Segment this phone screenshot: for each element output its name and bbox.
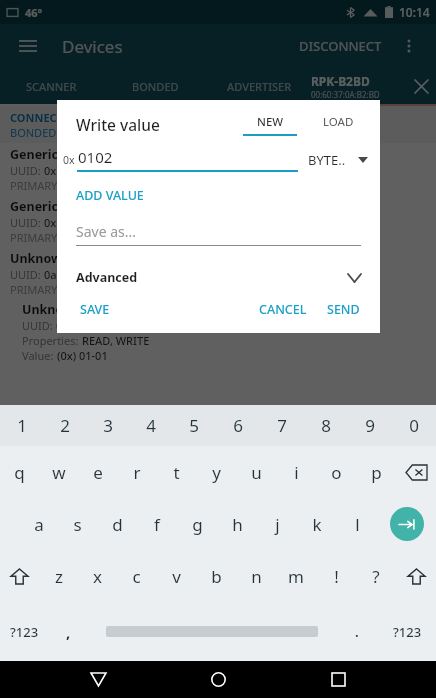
button[interactable]: More options [396, 33, 422, 59]
button[interactable]: ! [316, 550, 356, 602]
button[interactable]: Unknown Service [0, 247, 436, 299]
button[interactable]: SCANNER [0, 68, 103, 104]
button[interactable]: SEND [323, 297, 364, 322]
button[interactable]: 5 [172, 405, 216, 446]
staticText: , [66, 622, 71, 642]
button[interactable]: 4 [129, 405, 172, 446]
staticText: Unknown Service [10, 250, 118, 267]
staticText: k [312, 513, 322, 536]
button[interactable]: ? [356, 550, 396, 602]
button[interactable]: r [117, 446, 156, 498]
button[interactable]: 0 [392, 405, 436, 446]
button[interactable]: m [276, 550, 316, 602]
button[interactable]: k [297, 498, 337, 550]
button[interactable]: l [337, 498, 377, 550]
button[interactable]: . [335, 602, 379, 661]
staticText: z [55, 565, 63, 588]
staticText: a [34, 513, 44, 536]
staticText: BONDED [132, 79, 179, 94]
button[interactable]: b [196, 550, 236, 602]
button[interactable]: Backspace [396, 446, 436, 498]
button[interactable]: 9 [348, 405, 392, 446]
button[interactable]: CANCEL [255, 297, 311, 322]
button[interactable]: 6 [216, 405, 260, 446]
button[interactable]: Home [196, 661, 240, 698]
button[interactable]: g [177, 498, 217, 550]
button[interactable]: 1 [0, 405, 43, 446]
button[interactable]: p [356, 446, 396, 498]
staticText: 0x [63, 153, 75, 167]
button[interactable]: DISCONNECT [295, 31, 386, 61]
button[interactable]: u [236, 446, 276, 498]
button[interactable]: e [78, 446, 117, 498]
button[interactable]: 3 [86, 405, 129, 446]
button[interactable]: s [58, 498, 97, 550]
staticText: 10:14 [399, 4, 430, 20]
button[interactable]: j [257, 498, 297, 550]
button[interactable]: Space [88, 602, 335, 661]
button[interactable]: i [276, 446, 316, 498]
button[interactable]: , [48, 602, 88, 661]
staticText: Unknown Characteristic [22, 301, 173, 318]
button[interactable]: Enter [377, 498, 436, 550]
button[interactable]: BYTE.. [308, 151, 368, 172]
button[interactable]: d [97, 498, 137, 550]
button[interactable]: Recents [316, 661, 360, 698]
staticText: 4 [146, 414, 156, 437]
staticText: h [232, 513, 243, 536]
staticText: UUID: [10, 267, 44, 282]
button[interactable]: c [117, 550, 156, 602]
button[interactable]: v [156, 550, 196, 602]
button[interactable]: h [217, 498, 257, 550]
staticText: Write value [76, 114, 160, 135]
button[interactable]: RPK-B2BD [311, 68, 436, 104]
button[interactable]: BONDED [103, 68, 207, 104]
button[interactable]: NEW [237, 114, 303, 136]
staticText: e [93, 461, 103, 484]
button[interactable]: Back [76, 661, 120, 698]
staticText: g [192, 513, 203, 536]
button[interactable]: w [39, 446, 78, 498]
staticText: 0ab5b691-c2ce-c4ab-e711-6ccbaab5c888 [44, 267, 257, 282]
button[interactable]: z [39, 550, 78, 602]
button[interactable]: y [196, 446, 236, 498]
staticText: n [251, 565, 262, 588]
button[interactable]: Shift [396, 550, 436, 602]
button[interactable]: ADVERTISER [207, 68, 311, 104]
staticText: Advanced [76, 269, 138, 286]
staticText: 0 [409, 414, 419, 437]
button[interactable]: o [316, 446, 356, 498]
staticText: Properties: [22, 333, 82, 348]
staticText: q [14, 461, 25, 484]
staticText: SAVE [80, 301, 110, 318]
button[interactable]: q [0, 446, 39, 498]
button[interactable]: 8 [304, 405, 348, 446]
button[interactable]: a [19, 498, 58, 550]
button[interactable]: t [156, 446, 196, 498]
staticText: PRIMARY SERVICE [10, 178, 103, 193]
staticText: ! [334, 565, 339, 588]
staticText: SEND [327, 301, 360, 318]
staticText: READ, WRITE [82, 333, 150, 348]
button[interactable]: n [236, 550, 276, 602]
button[interactable]: Generic Attribute [0, 195, 436, 247]
button[interactable]: LOAD [317, 114, 360, 130]
staticText: 6 [233, 414, 243, 437]
button[interactable]: Generic Access [0, 143, 436, 195]
staticText: 3 [103, 414, 113, 437]
button[interactable]: ?123 [379, 602, 436, 661]
button[interactable]: f [137, 498, 177, 550]
staticText: 0x1801 [44, 215, 82, 230]
button[interactable]: 7 [260, 405, 304, 446]
button[interactable]: Menu [14, 32, 42, 60]
button[interactable]: ?123 [0, 602, 48, 661]
button[interactable]: x [78, 550, 117, 602]
staticText: t [173, 461, 180, 484]
button[interactable]: SAVE [76, 297, 114, 322]
button[interactable]: 2 [43, 405, 86, 446]
button[interactable]: Shift [0, 550, 39, 602]
button[interactable]: ADD VALUE [57, 185, 152, 206]
button[interactable]: Advanced [57, 266, 380, 289]
button[interactable]: Close tab [410, 75, 432, 97]
staticText: DISCONNECT [299, 37, 382, 55]
